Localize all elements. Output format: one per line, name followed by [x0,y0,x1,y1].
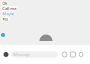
button[interactable]: More [79,52,83,56]
staticText: Maybe [2,11,14,16]
button[interactable]: Camera [3,52,8,57]
button[interactable]: Apps [70,52,75,57]
staticText: Yes [2,16,8,22]
staticText: iMessage [13,52,30,57]
button[interactable]: iMessage [11,51,58,58]
button[interactable]: Audio message [62,52,67,57]
staticText: Ok [2,0,7,6]
staticText: Call me [2,6,16,11]
